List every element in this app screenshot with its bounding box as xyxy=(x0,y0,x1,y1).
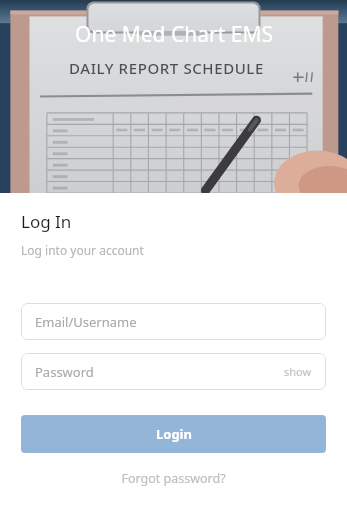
button[interactable]: Forgot password? xyxy=(0,470,347,487)
staticText: Password xyxy=(35,363,94,381)
staticText: Forgot password? xyxy=(121,470,226,487)
staticText: Log In xyxy=(21,210,72,233)
staticText: Login xyxy=(156,425,192,443)
staticText: Email/Username xyxy=(35,313,137,331)
staticText: Log into your account xyxy=(21,242,144,258)
staticText: One Med Chart EMS xyxy=(75,20,273,49)
button[interactable]: Password xyxy=(21,353,326,390)
staticText: show xyxy=(284,364,312,379)
staticText: DAILY REPORT SCHEDULE xyxy=(69,58,264,78)
button[interactable]: show xyxy=(284,364,312,379)
button[interactable]: Login xyxy=(21,415,326,453)
button[interactable]: Email/Username xyxy=(21,303,326,340)
